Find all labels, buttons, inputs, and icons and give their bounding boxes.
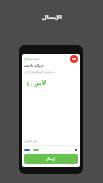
staticText: تم تحويل المبلغ بنجاح الى	[24, 70, 56, 74]
button[interactable]: Logo	[70, 55, 78, 63]
staticText: لاير	[35, 79, 47, 87]
staticText: الإيصال	[42, 14, 62, 20]
button[interactable]: إرسال	[24, 154, 78, 164]
staticText: ١٠٠	[26, 80, 37, 87]
staticText: تمت بنجاح	[24, 56, 39, 61]
staticText: حوالة ناجحه	[24, 63, 44, 68]
staticText: رقم الجوال	[24, 139, 38, 143]
staticText: إرسال	[46, 157, 56, 161]
